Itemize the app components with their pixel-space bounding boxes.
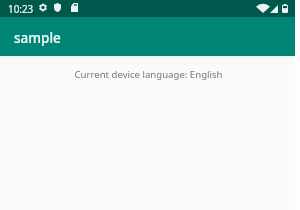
other: Mobile signal full: [270, 5, 278, 13]
other: Wi-Fi signal full: [258, 4, 268, 13]
button[interactable]: sample: [0, 17, 295, 56]
staticText: sample: [14, 29, 61, 47]
other: SD card: [71, 3, 78, 12]
staticText: 10:23: [8, 2, 34, 15]
other: VPN: [54, 3, 61, 12]
staticText: Current device language: English: [74, 68, 223, 81]
other: Developer options: [39, 3, 47, 12]
other: Battery: [282, 4, 288, 13]
